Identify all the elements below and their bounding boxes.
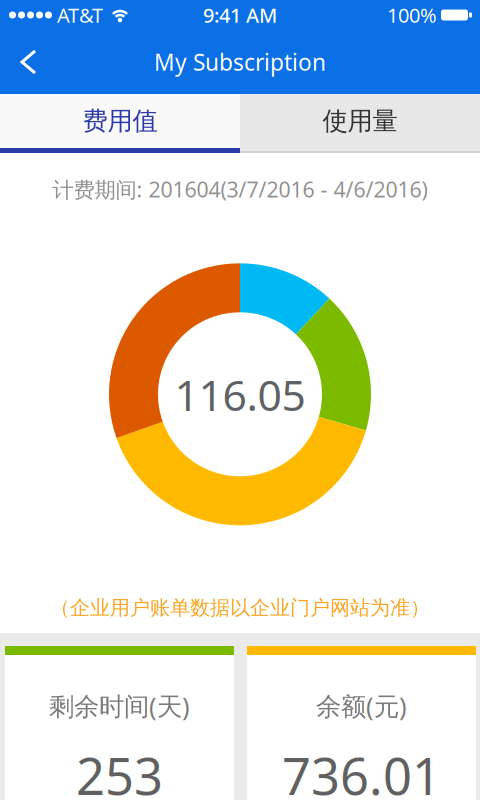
button[interactable]: Back (0, 30, 55, 94)
staticText: 剩余时间(天) (49, 689, 190, 723)
staticText: 9:41 AM (203, 2, 277, 28)
staticText: AT&T (57, 2, 103, 28)
staticText: 使用量 (322, 105, 397, 136)
staticText: （企业用户账单数据以企业门户网站为准） (50, 595, 430, 620)
staticText: 100% (387, 2, 437, 28)
staticText: 116.05 (174, 366, 305, 423)
button[interactable]: 使用量 (240, 94, 480, 148)
staticText: 253 (76, 742, 163, 800)
staticText: 费用值 (82, 105, 157, 136)
staticText: 余额(元) (316, 689, 407, 723)
staticText: 736.01 (282, 742, 441, 800)
staticText: My Subscription (154, 47, 326, 77)
staticText: 计费期间: 201604(3/7/2016 - 4/6/2016) (52, 175, 427, 203)
button[interactable]: 费用值 (0, 94, 240, 148)
